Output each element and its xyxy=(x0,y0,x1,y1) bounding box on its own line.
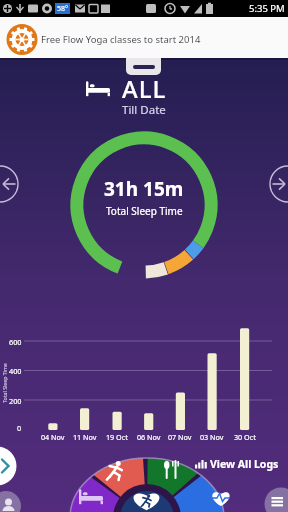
button[interactable] xyxy=(97,455,139,489)
staticText: 600 xyxy=(9,337,22,347)
staticText: 06 Nov xyxy=(137,432,161,442)
staticText: 0 xyxy=(17,423,22,433)
staticText: 11 Nov xyxy=(73,432,97,442)
button[interactable] xyxy=(0,447,17,485)
staticText: 19 Oct xyxy=(106,432,128,442)
staticText: Till Date xyxy=(122,102,166,117)
staticText: 03 Nov xyxy=(200,432,224,442)
staticText: 31h 15m xyxy=(104,176,184,200)
button[interactable]: View All Logs xyxy=(191,455,279,473)
staticText: 400 xyxy=(9,366,22,376)
staticText: Free Flow Yoga classes to start 2014 xyxy=(41,33,201,46)
staticText: 58° xyxy=(57,4,69,14)
button[interactable] xyxy=(198,480,234,512)
button[interactable] xyxy=(268,166,288,202)
staticText: 07 Nov xyxy=(168,432,192,442)
button[interactable] xyxy=(150,455,192,489)
button[interactable] xyxy=(72,480,112,512)
button[interactable] xyxy=(0,166,20,202)
button[interactable]: Free Flow Yoga classes to start 2014 xyxy=(0,17,288,58)
staticText: 5:35 PM xyxy=(249,2,285,15)
staticText: 30 Oct xyxy=(234,432,256,442)
button[interactable] xyxy=(122,490,172,512)
staticText: 200 xyxy=(9,396,22,406)
button[interactable] xyxy=(0,491,21,512)
staticText: Total Sleep Time xyxy=(106,204,183,218)
staticText: Total Sleep Time xyxy=(1,363,8,403)
staticText: View All Logs xyxy=(210,457,279,471)
button[interactable] xyxy=(126,58,161,75)
staticText: 04 Nov xyxy=(41,432,65,442)
button[interactable] xyxy=(264,488,288,512)
staticText: ALL xyxy=(122,72,167,102)
